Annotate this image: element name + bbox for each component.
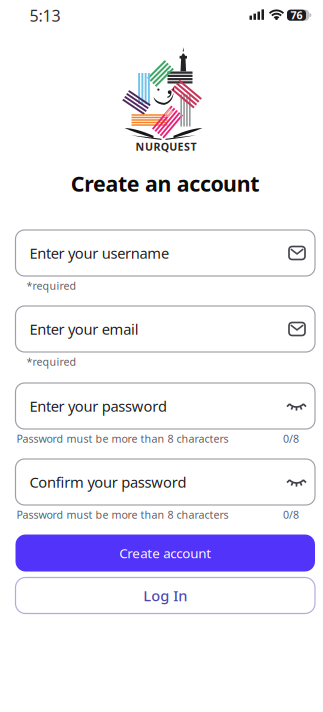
staticText: Password must be more than 8 characters xyxy=(16,431,228,446)
staticText: NURQUEST xyxy=(136,139,196,154)
staticText: Password must be more than 8 characters xyxy=(16,507,228,522)
staticText: Enter your password xyxy=(29,396,167,416)
button[interactable]: Log In xyxy=(15,577,315,613)
staticText: 0/8 xyxy=(283,507,299,522)
staticText: *required xyxy=(26,278,76,293)
staticText: 76 xyxy=(290,8,302,22)
staticText: Create an account xyxy=(71,169,259,198)
button[interactable]: Confirm your password xyxy=(15,459,315,505)
button[interactable]: Enter your username xyxy=(15,230,315,276)
button[interactable]: Enter your email xyxy=(15,306,315,352)
staticText: Enter your email xyxy=(29,319,139,339)
button[interactable]: Show password xyxy=(284,396,308,416)
staticText: Confirm your password xyxy=(29,472,186,492)
button[interactable]: Enter your password xyxy=(15,383,315,429)
button[interactable]: Show password xyxy=(284,472,308,492)
staticText: *required xyxy=(26,354,76,369)
staticText: Enter your username xyxy=(29,243,169,263)
staticText: 5:13 xyxy=(29,5,60,26)
staticText: 0/8 xyxy=(283,431,299,446)
button[interactable]: Create account xyxy=(15,534,315,571)
staticText: Create account xyxy=(119,544,211,562)
staticText: Log In xyxy=(143,586,187,605)
